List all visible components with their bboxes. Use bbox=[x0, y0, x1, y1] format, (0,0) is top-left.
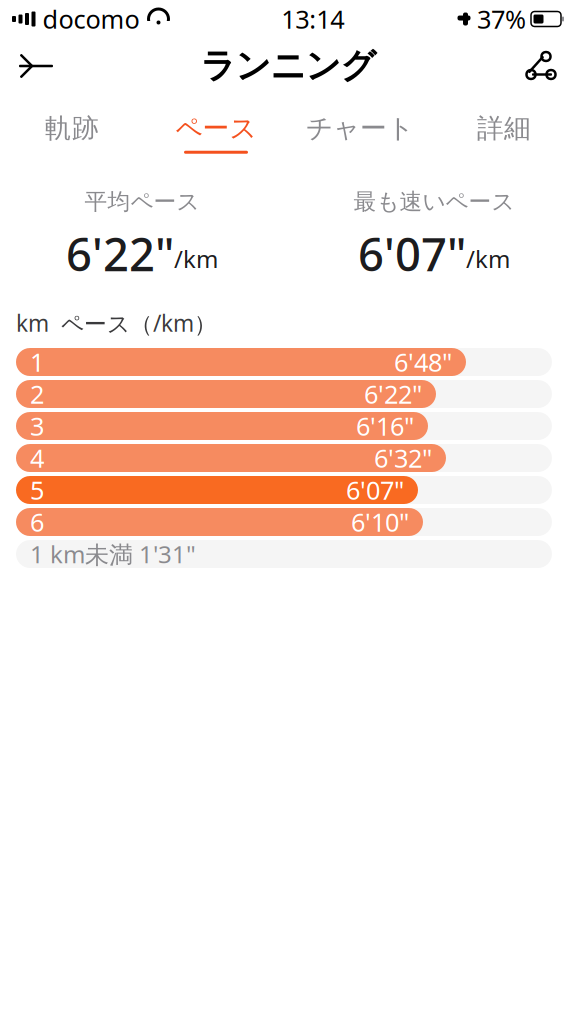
button[interactable]: チャート bbox=[288, 104, 432, 162]
staticText: 13:14 bbox=[281, 2, 344, 36]
staticText: チャート bbox=[306, 112, 414, 145]
staticText: 1 bbox=[30, 345, 44, 379]
staticText: 6'10" bbox=[351, 505, 409, 539]
staticText: 詳細 bbox=[477, 112, 531, 145]
staticText: 最も速いペース bbox=[353, 188, 514, 216]
staticText: 37% bbox=[477, 2, 526, 36]
button[interactable]: Back bbox=[4, 38, 68, 94]
staticText: ランニング bbox=[200, 45, 375, 87]
staticText: 5 bbox=[30, 473, 44, 507]
staticText: 6'16" bbox=[356, 409, 414, 443]
staticText: 6'07" bbox=[358, 224, 466, 284]
button[interactable]: Share bbox=[508, 38, 572, 94]
staticText: 平均ペース bbox=[84, 188, 199, 216]
staticText: /km bbox=[174, 243, 218, 275]
staticText: 2 bbox=[30, 377, 44, 411]
staticText: ペース bbox=[175, 112, 256, 145]
staticText: 6'07" bbox=[346, 473, 404, 507]
staticText: 6'32" bbox=[374, 441, 432, 475]
staticText: 6'48" bbox=[394, 345, 452, 379]
staticText: 4 bbox=[30, 441, 44, 475]
staticText: 軌跡 bbox=[45, 112, 99, 145]
staticText: km ペース（/km） bbox=[16, 308, 217, 338]
staticText: /km bbox=[466, 243, 510, 275]
staticText: 6'22" bbox=[66, 224, 174, 284]
button[interactable]: 軌跡 bbox=[0, 104, 144, 162]
staticText: 3 bbox=[30, 409, 44, 443]
staticText: 1 km未満 1'31" bbox=[30, 538, 196, 570]
staticText: docomo bbox=[42, 2, 139, 36]
staticText: 6'22" bbox=[364, 377, 422, 411]
staticText: 6 bbox=[30, 505, 44, 539]
button[interactable]: ペース bbox=[144, 104, 288, 162]
button[interactable]: 詳細 bbox=[432, 104, 576, 162]
